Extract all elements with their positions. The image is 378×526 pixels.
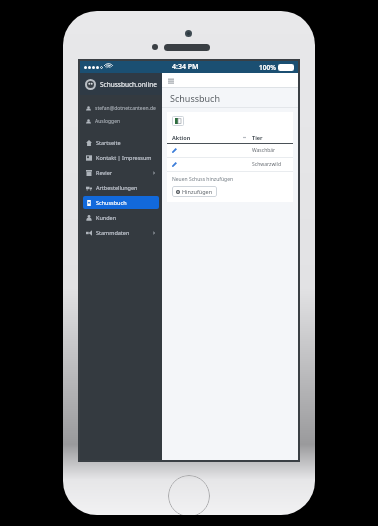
staticText: Waschbär	[252, 147, 276, 154]
staticText: Hinzufügen	[182, 188, 213, 195]
staticText: Schussbuch.online	[100, 80, 157, 89]
button[interactable]: Menu	[167, 77, 174, 84]
staticText: stefan@dotnetcanteen.de	[95, 105, 156, 112]
button[interactable]: Schussbuch	[83, 196, 159, 209]
staticText: Neuen Schuss hinzufügen	[172, 176, 234, 183]
button[interactable]: Schussbuch.online	[80, 73, 162, 95]
button[interactable]: Startseite	[83, 136, 159, 149]
staticText: Kontakt | Impressum	[96, 154, 152, 161]
staticText: Schwarzwild	[252, 161, 281, 168]
button[interactable]: Artbestellungen	[83, 181, 159, 194]
button[interactable]: Schwarzwild	[167, 158, 293, 171]
button[interactable]: Stammdaten	[83, 226, 159, 239]
staticText: 100%	[259, 63, 276, 72]
staticText: Startseite	[96, 139, 121, 146]
button[interactable]: Hinzufügen	[172, 186, 217, 197]
staticText: Aktion	[172, 134, 191, 141]
button[interactable]: Kunden	[83, 211, 159, 224]
staticText: Stammdaten	[96, 229, 130, 236]
staticText: Schussbuch	[170, 92, 220, 104]
button[interactable]: Ausloggen	[80, 115, 162, 128]
button[interactable]: Export	[172, 116, 184, 126]
staticText: Revier	[96, 169, 112, 176]
staticText: 4:34 PM	[172, 62, 199, 72]
button[interactable]: Kontakt | Impressum	[83, 151, 159, 164]
staticText: Artbestellungen	[96, 184, 138, 191]
button[interactable]: Waschbär	[167, 144, 293, 157]
staticText: Kunden	[96, 214, 117, 221]
staticText: Schussbuch	[96, 199, 127, 206]
button[interactable]: Revier	[83, 166, 159, 179]
staticText: Ausloggen	[95, 118, 121, 125]
staticText: Tier	[252, 134, 263, 141]
button[interactable]: stefan@dotnetcanteen.de	[80, 102, 162, 115]
